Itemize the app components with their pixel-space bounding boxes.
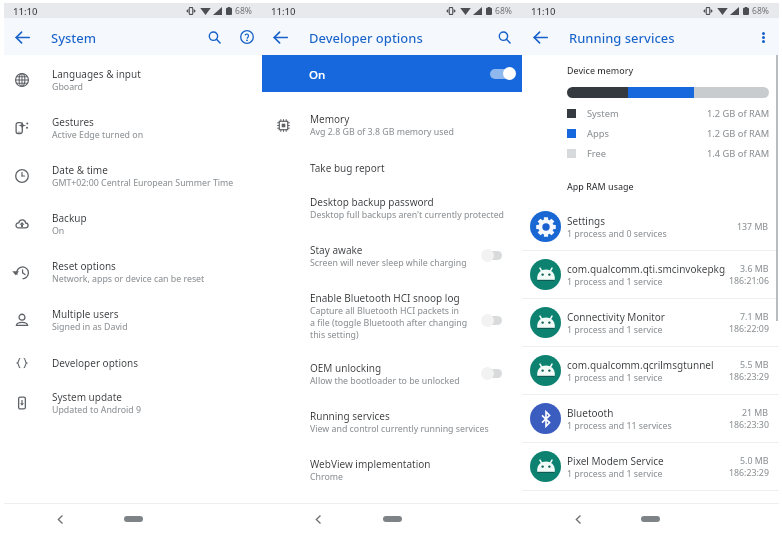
- staticText: com.qualcomm.qcrilmsgtunnel: [567, 358, 714, 372]
- button[interactable]: More options: [752, 26, 774, 48]
- staticText: Running services: [569, 29, 675, 47]
- staticText: Apps: [587, 127, 609, 140]
- button[interactable]: Connectivity Monitor: [522, 299, 779, 346]
- button[interactable]: Search: [493, 26, 515, 48]
- button[interactable]: Navigate up: [269, 26, 291, 48]
- staticText: Gboard: [52, 81, 83, 93]
- staticText: Stay awake: [310, 243, 363, 257]
- staticText: 1 process and 1 service: [567, 276, 663, 288]
- staticText: Running services: [310, 409, 390, 423]
- staticText: Developer options: [309, 29, 423, 47]
- staticText: Reset options: [52, 259, 116, 273]
- button[interactable]: WebView implementation: [262, 451, 522, 499]
- staticText: 21 MB: [742, 407, 769, 419]
- staticText: 186:23:29: [729, 371, 769, 383]
- staticText: Memory: [310, 112, 350, 126]
- staticText: Enable Bluetooth HCI snoop log: [310, 291, 460, 305]
- button[interactable]: Home: [641, 516, 660, 522]
- button[interactable]: Pixel Modem Service: [522, 443, 779, 490]
- staticText: Bluetooth: [567, 406, 614, 420]
- button[interactable]: Developer options: [4, 349, 262, 384]
- staticText: Free: [587, 147, 606, 160]
- button[interactable]: Navigate up: [11, 26, 33, 48]
- staticText: System update: [52, 390, 122, 404]
- button[interactable]: Running services: [262, 403, 522, 451]
- staticText: a file (toggle Bluetooth after changing: [310, 317, 468, 329]
- staticText: 7.1 MB: [740, 311, 769, 323]
- button[interactable]: Reset options: [4, 253, 262, 301]
- button[interactable]: Bluetooth: [522, 395, 779, 442]
- button[interactable]: Settings: [522, 203, 779, 250]
- staticText: 68%: [235, 5, 252, 17]
- staticText: com.qualcomm.qti.smcinvokepkg…: [567, 262, 726, 276]
- button[interactable]: [481, 249, 502, 262]
- staticText: this setting): [310, 329, 359, 341]
- staticText: GMT+02:00 Central European Summer Time: [52, 177, 234, 189]
- staticText: Gestures: [52, 115, 94, 129]
- staticText: View and control currently running servi…: [310, 423, 489, 435]
- staticText: 11:10: [271, 5, 296, 18]
- staticText: 1.2 GB of RAM: [707, 127, 770, 140]
- staticText: Developer options: [52, 356, 139, 370]
- button[interactable]: Backup: [4, 205, 262, 253]
- staticText: Languages & input: [52, 67, 141, 81]
- button[interactable]: Desktop backup password: [262, 189, 522, 237]
- staticText: Connectivity Monitor: [567, 310, 665, 324]
- staticText: Pixel Modem Service: [567, 454, 664, 468]
- button[interactable]: Home: [124, 516, 143, 522]
- button[interactable]: Memory: [262, 106, 522, 154]
- staticText: Active Edge turned on: [52, 129, 144, 141]
- staticText: 1 process and 11 services: [567, 420, 672, 432]
- button[interactable]: Date & time: [4, 157, 262, 205]
- button[interactable]: System update: [4, 384, 262, 432]
- staticText: Chrome: [310, 471, 343, 483]
- button[interactable]: Gestures: [4, 109, 262, 157]
- staticText: Avg 2.8 GB of 3.8 GB memory used: [310, 126, 454, 138]
- staticText: 68%: [752, 5, 769, 17]
- button[interactable]: [481, 314, 502, 327]
- button[interactable]: [481, 367, 502, 380]
- staticText: 1 process and 1 service: [567, 324, 663, 336]
- staticText: 1 process and 1 service: [567, 372, 663, 384]
- staticText: 5.5 MB: [740, 359, 769, 371]
- staticText: Capture all Bluetooth HCI packets in: [310, 305, 460, 317]
- button[interactable]: Navigate up: [529, 26, 551, 48]
- button[interactable]: Multiple users: [4, 301, 262, 349]
- staticText: Desktop full backups aren't currently pr…: [310, 209, 504, 221]
- staticText: Desktop backup password: [310, 195, 434, 209]
- staticText: 186:21:06: [729, 275, 769, 287]
- button[interactable]: Take bug report: [262, 154, 522, 189]
- staticText: 1 process and 1 service: [567, 468, 663, 480]
- button[interactable]: Stay awake: [262, 237, 522, 285]
- staticText: On: [309, 67, 326, 83]
- button[interactable]: Search: [203, 26, 225, 48]
- button[interactable]: com.qualcomm.qcrilmsgtunnel: [522, 347, 779, 394]
- staticText: Allow the bootloader to be unlocked: [310, 375, 460, 387]
- staticText: WebView implementation: [310, 457, 431, 471]
- button[interactable]: Back: [50, 509, 70, 529]
- staticText: Date & time: [52, 163, 108, 177]
- staticText: Settings: [567, 214, 606, 228]
- button[interactable]: On: [262, 55, 522, 92]
- staticText: 1.2 GB of RAM: [707, 107, 770, 120]
- button[interactable]: Home: [383, 516, 402, 522]
- staticText: 137 MB: [737, 221, 769, 233]
- button[interactable]: Enable Bluetooth HCI snoop log: [262, 285, 522, 355]
- button[interactable]: Back: [568, 509, 588, 529]
- staticText: App RAM usage: [567, 180, 634, 192]
- staticText: 11:10: [13, 5, 38, 18]
- button[interactable]: Help: [236, 26, 258, 48]
- staticText: 3.6 MB: [740, 263, 769, 275]
- button[interactable]: Languages & input: [4, 61, 262, 109]
- staticText: OEM unlocking: [310, 361, 382, 375]
- staticText: 11:10: [531, 5, 556, 18]
- staticText: 186:23:30: [729, 419, 769, 431]
- button[interactable]: com.qualcomm.qti.smcinvokepkg…: [522, 251, 779, 298]
- staticText: 186:23:29: [729, 467, 769, 479]
- button[interactable]: OEM unlocking: [262, 355, 522, 403]
- staticText: Network, apps or device can be reset: [52, 273, 205, 285]
- staticText: Multiple users: [52, 307, 119, 321]
- button[interactable]: Back: [308, 509, 328, 529]
- staticText: 5.0 MB: [740, 455, 769, 467]
- staticText: Screen will never sleep while charging: [310, 257, 467, 269]
